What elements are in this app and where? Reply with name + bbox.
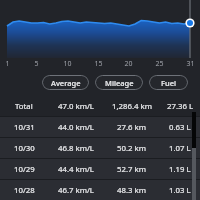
button[interactable]: 10/29 xyxy=(0,159,200,179)
staticText: 52.7 km xyxy=(117,164,146,175)
button[interactable]: 10/28 xyxy=(0,180,200,200)
staticText: 1.03 L xyxy=(169,185,191,196)
staticText: 1.07 L xyxy=(169,143,191,154)
button[interactable]: Mileage xyxy=(95,75,143,90)
staticText: 10/31 xyxy=(14,122,35,133)
staticText: 27.6 km xyxy=(117,122,146,133)
staticText: 46.8 km/L xyxy=(58,143,94,154)
staticText: 10 xyxy=(61,59,74,69)
staticText: 1.19 L xyxy=(169,164,191,175)
staticText: 15 xyxy=(92,59,105,69)
staticText: 5 xyxy=(30,59,43,69)
staticText: 1 xyxy=(1,59,14,69)
staticText: 10/30 xyxy=(14,143,35,154)
staticText: 10/28 xyxy=(14,185,35,196)
staticText: 27.36 L xyxy=(167,101,194,112)
staticText: 31 xyxy=(184,59,197,69)
staticText: 10/29 xyxy=(14,164,35,175)
staticText: 48.3 km xyxy=(117,185,146,196)
staticText: 44.0 km/L xyxy=(58,122,94,133)
button[interactable]: Fuel xyxy=(149,75,188,90)
staticText: 46.7 km/L xyxy=(58,185,94,196)
staticText: Total xyxy=(15,101,33,112)
staticText: 20 xyxy=(122,59,135,69)
staticText: 25 xyxy=(153,59,166,69)
staticText: 44.4 km/L xyxy=(58,164,94,175)
staticText: 1,286.4 km xyxy=(112,101,152,112)
staticText: 50.2 km xyxy=(117,143,146,154)
button[interactable]: Total xyxy=(0,96,200,116)
staticText: Average xyxy=(51,78,81,88)
staticText: Mileage xyxy=(105,78,134,88)
button[interactable]: 10/30 xyxy=(0,138,200,158)
staticText: 0.63 L xyxy=(169,122,191,133)
staticText: Fuel xyxy=(161,78,176,88)
button[interactable]: 10/31 xyxy=(0,117,200,137)
staticText: 47.0 km/L xyxy=(58,101,94,112)
button[interactable]: Average xyxy=(42,75,89,90)
